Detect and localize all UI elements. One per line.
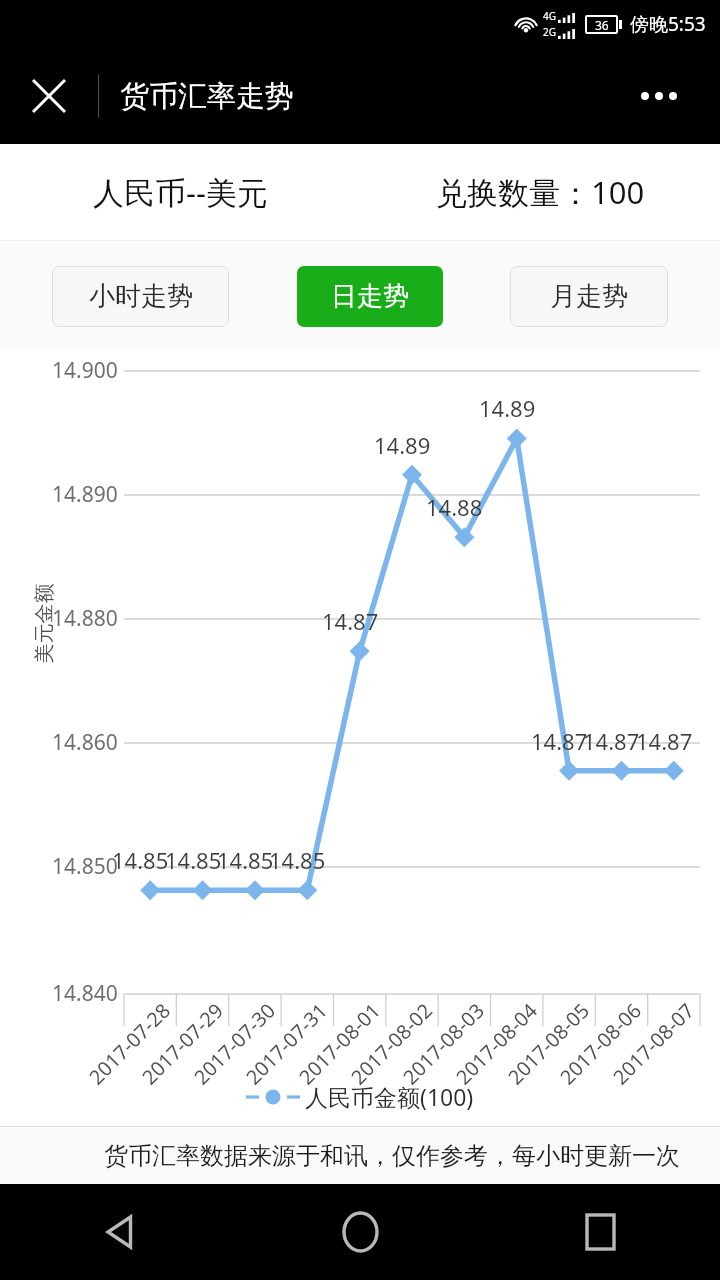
staticText: 14.860	[52, 728, 118, 757]
staticText: 14.880	[52, 604, 118, 633]
staticText: 14.850	[52, 852, 118, 881]
staticText: 2017-08-01	[293, 997, 386, 1090]
staticText: 2017-07-30	[188, 997, 281, 1090]
button[interactable]: 小时走势	[52, 266, 229, 327]
staticText: 人民币--美元	[93, 171, 268, 213]
staticText: 2017-08-07	[607, 997, 700, 1090]
staticText: 14.87	[531, 726, 588, 756]
staticText: 兑换数量：100	[436, 171, 645, 213]
staticText: 2017-07-28	[83, 997, 176, 1090]
staticText: 14.87	[322, 606, 379, 636]
staticText: 人民币金额(100)	[305, 1081, 474, 1112]
button[interactable]: 日走势	[297, 266, 443, 327]
staticText: 货币汇率走势	[120, 78, 294, 115]
staticText: 2017-07-31	[240, 997, 333, 1090]
staticText: 2017-08-03	[397, 997, 490, 1090]
staticText: 14.900	[52, 356, 118, 385]
button[interactable]: 月走势	[510, 266, 668, 327]
staticText: 傍晚5:53	[630, 11, 706, 37]
staticText: 4G	[543, 9, 556, 23]
staticText: 2017-07-29	[136, 997, 229, 1090]
staticText: 14.840	[52, 979, 118, 1008]
staticText: 14.890	[52, 480, 118, 509]
button[interactable]: Recent apps	[480, 1184, 720, 1280]
staticText: 2017-08-05	[502, 997, 595, 1090]
staticText: 14.87	[636, 726, 693, 756]
staticText: 14.88	[426, 492, 483, 522]
button[interactable]: More options	[624, 74, 694, 118]
staticText: 2017-08-02	[345, 997, 438, 1090]
staticText: 小时走势	[89, 280, 193, 313]
staticText: 14.89	[479, 393, 536, 423]
staticText: 美元金额	[31, 583, 56, 663]
staticText: 月走势	[550, 280, 628, 313]
button[interactable]: Home	[240, 1184, 480, 1280]
staticText: 日走势	[331, 280, 409, 313]
staticText: 14.85	[165, 845, 222, 875]
staticText: 14.87	[583, 726, 640, 756]
staticText: 货币汇率数据来源于和讯，仅作参考，每小时更新一次	[104, 1141, 680, 1171]
staticText: 2017-08-06	[554, 997, 647, 1090]
staticText: 14.89	[374, 430, 431, 460]
button[interactable]: Close	[16, 63, 82, 129]
button[interactable]: Back	[0, 1184, 240, 1280]
staticText: 14.85	[112, 845, 169, 875]
staticText: 14.85	[217, 845, 274, 875]
staticText: 36	[595, 17, 609, 33]
staticText: 2017-08-04	[450, 997, 543, 1090]
staticText: 14.85	[269, 845, 326, 875]
staticText: 2G	[543, 25, 556, 39]
